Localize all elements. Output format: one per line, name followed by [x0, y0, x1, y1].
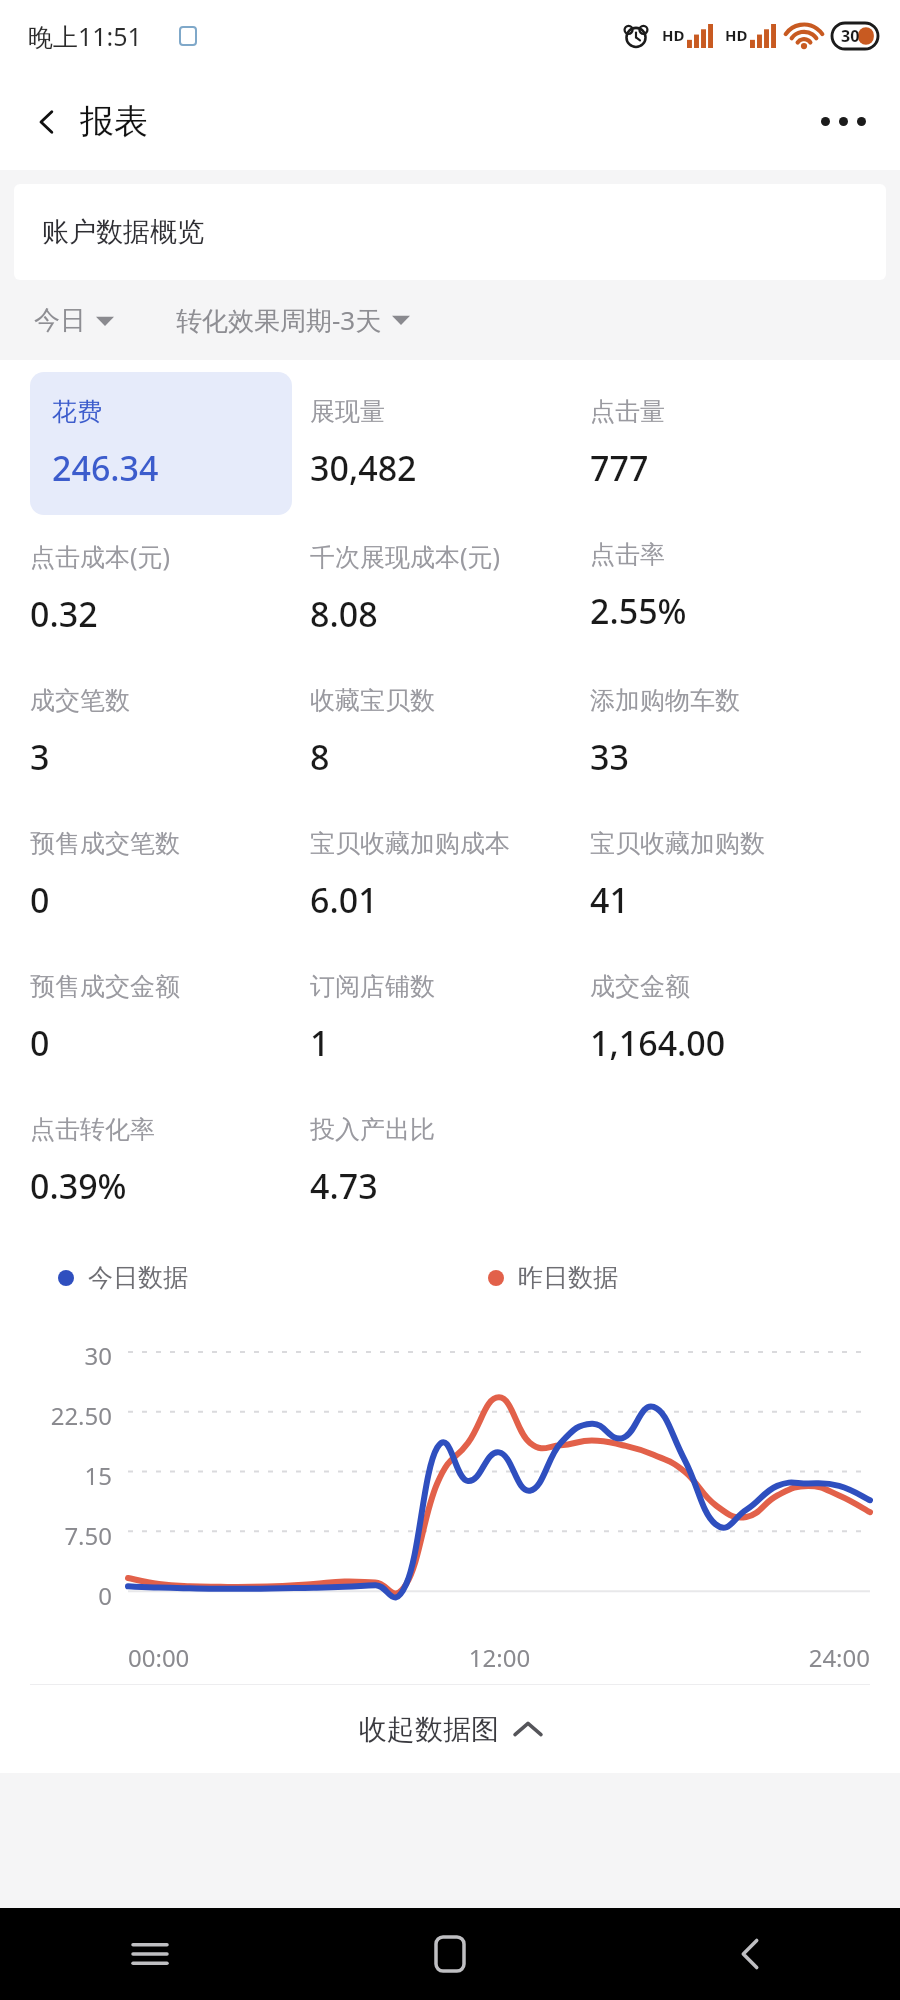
- button[interactable]: 订阅店铺数: [310, 947, 590, 1090]
- staticText: 0: [30, 877, 50, 923]
- staticText: 今日: [34, 304, 86, 337]
- button[interactable]: 昨日数据: [488, 1262, 618, 1293]
- staticText: 宝贝收藏加购成本: [310, 828, 510, 859]
- staticText: 8: [310, 734, 330, 780]
- other: Back: [32, 107, 62, 137]
- staticText: 投入产出比: [310, 1114, 435, 1145]
- staticText: 添加购物车数: [590, 685, 740, 716]
- staticText: 花费: [52, 396, 102, 427]
- button[interactable]: 预售成交金额: [30, 947, 310, 1090]
- staticText: 预售成交笔数: [30, 828, 180, 859]
- button[interactable]: 转化效果周期-3天: [176, 296, 410, 344]
- staticText: 点击量: [590, 396, 665, 427]
- button[interactable]: 点击转化率: [30, 1090, 310, 1233]
- staticText: 777: [590, 445, 649, 491]
- staticText: 成交金额: [590, 971, 690, 1002]
- button[interactable]: Recent apps: [0, 1908, 300, 2000]
- button[interactable]: 千次展现成本(元): [310, 515, 590, 661]
- staticText: 订阅店铺数: [310, 971, 435, 1002]
- button[interactable]: 宝贝收藏加购成本: [310, 804, 590, 947]
- staticText: 7.50: [64, 1519, 112, 1552]
- staticText: 成交笔数: [30, 685, 130, 716]
- staticText: 转化效果周期-3天: [176, 302, 382, 338]
- staticText: 2.55%: [590, 588, 687, 634]
- staticText: 33: [590, 734, 629, 780]
- button[interactable]: 点击量: [590, 372, 870, 515]
- button[interactable]: 账户数据概览: [14, 184, 886, 280]
- staticText: 1: [310, 1020, 330, 1066]
- staticText: HD: [662, 25, 685, 45]
- button[interactable]: 收藏宝贝数: [310, 661, 590, 804]
- staticText: 12:00: [376, 1641, 623, 1674]
- button[interactable]: 宝贝收藏加购数: [590, 804, 870, 947]
- staticText: 6.01: [310, 877, 378, 923]
- staticText: 点击率: [590, 539, 665, 570]
- staticText: 报表: [80, 100, 148, 143]
- button[interactable]: More options: [811, 107, 876, 136]
- button[interactable]: Home: [300, 1908, 600, 2000]
- staticText: 昨日数据: [518, 1262, 618, 1293]
- staticText: 收藏宝贝数: [310, 685, 435, 716]
- staticText: 0: [98, 1579, 112, 1612]
- button[interactable]: 花费: [30, 372, 292, 515]
- button[interactable]: Back: [26, 92, 154, 151]
- staticText: 0.32: [30, 591, 98, 637]
- staticText: 账户数据概览: [42, 215, 204, 249]
- staticText: 3: [30, 734, 50, 780]
- staticText: 千次展现成本(元): [310, 539, 501, 573]
- staticText: 15: [84, 1459, 112, 1492]
- staticText: 1,164.00: [590, 1020, 726, 1066]
- staticText: 预售成交金额: [30, 971, 180, 1002]
- staticText: 22.50: [50, 1399, 112, 1432]
- button[interactable]: 成交金额: [590, 947, 870, 1090]
- staticText: 30,482: [310, 445, 417, 491]
- staticText: 宝贝收藏加购数: [590, 828, 765, 859]
- staticText: 41: [590, 877, 629, 923]
- staticText: 点击成本(元): [30, 539, 171, 573]
- staticText: 晚上11:51: [28, 19, 142, 53]
- staticText: 00:00: [128, 1641, 376, 1674]
- staticText: 展现量: [310, 396, 385, 427]
- button[interactable]: 点击成本(元): [30, 515, 310, 661]
- staticText: 30: [84, 1339, 112, 1372]
- staticText: 4.73: [310, 1163, 378, 1209]
- button[interactable]: 预售成交笔数: [30, 804, 310, 947]
- button[interactable]: 今日: [34, 298, 114, 343]
- staticText: 0.39%: [30, 1163, 127, 1209]
- button[interactable]: 添加购物车数: [590, 661, 870, 804]
- staticText: 30: [841, 25, 860, 47]
- staticText: HD: [725, 25, 748, 45]
- staticText: 收起数据图: [359, 1712, 499, 1747]
- staticText: 24:00: [623, 1641, 870, 1674]
- button[interactable]: 点击率: [590, 515, 870, 658]
- staticText: 246.34: [52, 445, 159, 491]
- staticText: 0: [30, 1020, 50, 1066]
- button[interactable]: 投入产出比: [310, 1090, 590, 1233]
- staticText: 今日数据: [88, 1262, 188, 1293]
- button[interactable]: 展现量: [310, 372, 590, 515]
- staticText: 点击转化率: [30, 1114, 155, 1145]
- button[interactable]: 成交笔数: [30, 661, 310, 804]
- button[interactable]: Back: [600, 1908, 900, 2000]
- button[interactable]: 今日数据: [58, 1262, 188, 1293]
- staticText: 8.08: [310, 591, 378, 637]
- button[interactable]: 收起数据图: [0, 1685, 900, 1773]
